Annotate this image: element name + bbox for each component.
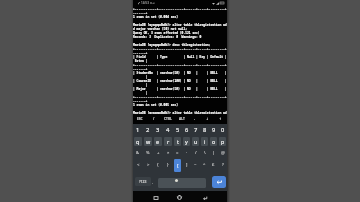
staticText: ESC — [137, 117, 143, 121]
staticText: \ — [204, 150, 206, 156]
button[interactable]: 6 — [183, 124, 190, 136]
button[interactable]: ^ — [201, 158, 208, 172]
button[interactable]: 5 — [174, 124, 181, 136]
button[interactable]: & — [134, 147, 142, 158]
button[interactable]: / — [192, 147, 199, 158]
button[interactable]: 2 — [144, 124, 152, 136]
button[interactable]: y — [183, 137, 190, 146]
button[interactable]: < — [134, 158, 142, 172]
staticText: £ — [212, 162, 215, 168]
button[interactable]: £ — [210, 158, 217, 172]
button[interactable]: 3 — [154, 124, 162, 136]
staticText: ALT — [179, 117, 185, 121]
staticText: + — [157, 150, 160, 156]
staticText: | — [133, 83, 148, 87]
button[interactable]: , — [149, 177, 157, 186]
staticText: r — [167, 138, 170, 145]
button[interactable]: > — [144, 158, 152, 172]
staticText: +------------+--------------+------+----… — [133, 7, 227, 11]
staticText: | CourseID | varchar(100) | NO | | NULL … — [133, 79, 227, 83]
staticText: 14:53 — [141, 1, 149, 5]
staticText: = — [176, 150, 179, 156]
staticText: | — [133, 91, 148, 95]
staticText: | — [133, 75, 148, 79]
button[interactable]: ALT — [175, 114, 188, 124]
button[interactable]: { — [154, 158, 162, 172]
button[interactable]: × — [164, 147, 172, 158]
staticText: ?123 — [139, 179, 147, 184]
staticText: +------------+--------------+------+----… — [133, 47, 227, 51]
button[interactable]: [ — [174, 159, 181, 172]
staticText: e — [156, 138, 160, 145]
button[interactable]: ~ — [192, 158, 199, 172]
button[interactable]: ?123 — [135, 177, 151, 186]
button[interactable]: + — [154, 147, 162, 158]
staticText: { — [157, 162, 159, 168]
button[interactable]: ESC — [133, 114, 147, 124]
button[interactable]: o — [210, 137, 217, 146]
button[interactable]: % — [144, 147, 152, 158]
button[interactable]: \ — [201, 147, 208, 158]
button[interactable]: ] — [183, 158, 190, 172]
staticText: CTRL — [164, 117, 172, 121]
staticText: MariaDB [mysqmpdbdb]> alter table tblreg… — [133, 23, 227, 27]
button[interactable]: 7 — [192, 124, 199, 136]
button[interactable]: · — [183, 147, 190, 158]
staticText: 5 rows in set (0.005 sec) — [133, 103, 179, 107]
button[interactable]: @ — [219, 147, 226, 158]
staticText: / — [195, 150, 197, 156]
staticText: 4 — [166, 126, 170, 134]
button[interactable]: t — [174, 137, 181, 146]
button[interactable]: Space — [158, 178, 206, 188]
button[interactable]: Back — [199, 192, 210, 202]
button[interactable]: Recents — [150, 192, 161, 202]
staticText: -------+ — [133, 51, 148, 55]
button[interactable]: 4 — [164, 124, 172, 136]
staticText: MariaDB [mysqmpdbdb]> desc tblregistrati… — [133, 43, 211, 47]
button[interactable]: e — [154, 137, 162, 146]
staticText: 9 — [212, 126, 216, 134]
staticText: p — [221, 138, 225, 145]
staticText: × — [167, 150, 170, 156]
button[interactable]: u — [192, 137, 199, 146]
button[interactable]: / — [147, 114, 161, 124]
button[interactable]: | — [210, 147, 217, 158]
staticText: - — [194, 117, 196, 121]
staticText: < — [137, 162, 140, 168]
staticText: ~ — [194, 162, 197, 168]
staticText: 7 — [194, 126, 198, 134]
staticText: ] — [186, 162, 188, 168]
staticText: o — [212, 138, 216, 145]
button[interactable]: i — [201, 137, 208, 146]
staticText: 1 — [136, 126, 140, 134]
staticText: q — [136, 138, 140, 145]
button[interactable]: 8 — [201, 124, 208, 136]
button[interactable]: 9 — [210, 124, 217, 136]
button[interactable]: ↑ — [214, 114, 227, 124]
staticText: [ — [177, 163, 179, 169]
button[interactable]: ↓ — [201, 114, 214, 124]
button[interactable]: CTRL — [161, 114, 175, 124]
button[interactable]: 1 — [134, 124, 142, 136]
staticText: @ — [221, 150, 225, 156]
staticText: · — [186, 150, 188, 156]
staticText: w — [146, 138, 151, 145]
staticText: ? — [222, 162, 224, 168]
button[interactable]: w — [144, 137, 152, 146]
button[interactable]: Enter — [212, 176, 226, 188]
button[interactable]: r — [164, 137, 172, 146]
staticText: 3 — [156, 126, 160, 134]
staticText: | Field | Type | Null | Key | Default | — [133, 55, 227, 59]
staticText: +------------+--------------+------+----… — [133, 63, 227, 67]
staticText: y — [185, 138, 188, 145]
button[interactable]: 0 — [219, 124, 226, 136]
button[interactable]: } — [164, 158, 172, 172]
staticText: u — [194, 138, 198, 145]
button[interactable]: q — [134, 137, 142, 146]
staticText: , — [152, 179, 154, 185]
button[interactable]: = — [174, 147, 181, 158]
button[interactable]: - — [188, 114, 201, 124]
button[interactable]: p — [219, 137, 226, 146]
button[interactable]: ? — [219, 158, 226, 172]
button[interactable]: Home — [174, 192, 185, 202]
